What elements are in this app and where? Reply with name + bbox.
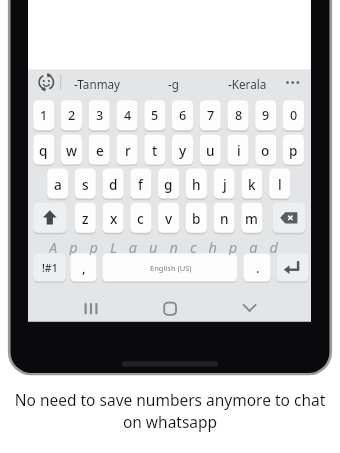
- button[interactable]: [76, 294, 106, 322]
- button[interactable]: e: [89, 135, 110, 165]
- button[interactable]: -Kerala: [212, 70, 283, 97]
- button[interactable]: z: [75, 203, 96, 233]
- staticText: 3: [96, 107, 104, 124]
- staticText: e: [96, 141, 104, 160]
- button[interactable]: r: [117, 135, 138, 165]
- staticText: t: [152, 141, 158, 160]
- button[interactable]: ,: [71, 254, 97, 282]
- button[interactable]: d: [103, 169, 124, 199]
- button[interactable]: v: [158, 203, 179, 233]
- staticText: No need to save numbers anymore to chat: [0, 389, 340, 410]
- staticText: b: [192, 209, 201, 228]
- staticText: y: [179, 141, 187, 160]
- staticText: l: [278, 175, 282, 194]
- button[interactable]: w: [61, 135, 82, 165]
- button[interactable]: [103, 254, 238, 282]
- staticText: q: [39, 141, 48, 160]
- button[interactable]: j: [214, 169, 235, 199]
- button[interactable]: x: [103, 203, 124, 233]
- staticText: i: [237, 141, 241, 160]
- button[interactable]: [235, 294, 265, 322]
- button[interactable]: m: [241, 203, 262, 233]
- button[interactable]: [277, 254, 309, 282]
- button[interactable]: b: [186, 203, 207, 233]
- staticText: h: [192, 175, 201, 194]
- staticText: o: [261, 141, 270, 160]
- button[interactable]: s: [75, 169, 96, 199]
- button[interactable]: 8: [228, 100, 249, 130]
- button[interactable]: g: [158, 169, 179, 199]
- button[interactable]: [155, 294, 185, 322]
- staticText: x: [110, 209, 118, 228]
- staticText: j: [223, 175, 227, 194]
- button[interactable]: o: [255, 135, 276, 165]
- button[interactable]: [33, 203, 66, 233]
- button[interactable]: [273, 203, 306, 233]
- button[interactable]: -g: [138, 70, 209, 97]
- staticText: n: [220, 209, 229, 228]
- button[interactable]: i: [228, 135, 249, 165]
- staticText: -Kerala: [228, 76, 267, 92]
- button[interactable]: n: [214, 203, 235, 233]
- staticText: -g: [168, 76, 179, 92]
- staticText: 7: [207, 107, 215, 124]
- staticText: c: [137, 209, 144, 228]
- staticText: s: [82, 175, 89, 194]
- staticText: on whatsapp: [0, 411, 340, 432]
- button[interactable]: f: [130, 169, 151, 199]
- button[interactable]: 9: [255, 100, 276, 130]
- staticText: p: [289, 141, 298, 160]
- staticText: 8: [235, 107, 243, 124]
- staticText: w: [66, 141, 77, 160]
- button[interactable]: 4: [117, 100, 138, 130]
- staticText: 9: [262, 107, 270, 124]
- staticText: 4: [124, 107, 132, 124]
- button[interactable]: [283, 70, 309, 97]
- staticText: m: [245, 209, 258, 228]
- staticText: 5: [151, 107, 159, 124]
- staticText: -Tanmay: [74, 76, 121, 92]
- button[interactable]: English (US): [103, 254, 238, 282]
- button[interactable]: p: [283, 135, 304, 165]
- staticText: k: [248, 175, 256, 194]
- staticText: v: [165, 209, 173, 228]
- button[interactable]: c: [130, 203, 151, 233]
- button[interactable]: u: [200, 135, 221, 165]
- staticText: a: [54, 175, 62, 194]
- button[interactable]: a: [47, 169, 68, 199]
- button[interactable]: 3: [89, 100, 110, 130]
- button[interactable]: .: [244, 254, 271, 282]
- staticText: .: [256, 259, 260, 277]
- staticText: r: [125, 141, 131, 160]
- button[interactable]: 7: [200, 100, 221, 130]
- staticText: 1: [40, 107, 48, 124]
- staticText: z: [82, 209, 89, 228]
- staticText: 2: [68, 107, 76, 124]
- staticText: ,: [82, 259, 86, 277]
- staticText: 6: [179, 107, 187, 124]
- staticText: d: [109, 175, 118, 194]
- staticText: AppLaunchpad: [49, 237, 290, 255]
- staticText: u: [206, 141, 215, 160]
- button[interactable]: -Tanmay: [62, 70, 133, 97]
- staticText: !#1: [42, 261, 58, 275]
- button[interactable]: y: [172, 135, 193, 165]
- button[interactable]: k: [241, 169, 262, 199]
- button[interactable]: 0: [283, 100, 304, 130]
- button[interactable]: !#1: [33, 254, 66, 282]
- staticText: English (US): [150, 263, 192, 273]
- button[interactable]: l: [269, 169, 290, 199]
- button[interactable]: [34, 70, 60, 97]
- button[interactable]: 6: [172, 100, 193, 130]
- staticText: f: [138, 175, 143, 194]
- button[interactable]: 5: [144, 100, 165, 130]
- staticText: 0: [290, 107, 298, 124]
- button[interactable]: t: [144, 135, 165, 165]
- button[interactable]: 2: [61, 100, 82, 130]
- button[interactable]: q: [33, 135, 54, 165]
- button[interactable]: 1: [33, 100, 54, 130]
- staticText: g: [164, 175, 173, 194]
- button[interactable]: h: [186, 169, 207, 199]
